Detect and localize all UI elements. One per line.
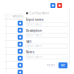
- staticText: Enter value: [27, 23, 42, 26]
- button[interactable]: Edit row: [18, 63, 23, 68]
- staticText: Input name: [26, 18, 44, 21]
- staticText: Type: [26, 40, 32, 43]
- staticText: Enter value: [27, 55, 42, 59]
- staticText: Configuration: [29, 11, 49, 15]
- button[interactable]: Edit row: [18, 35, 23, 40]
- staticText: Reset: [47, 64, 55, 67]
- staticText: Actions: [12, 14, 22, 18]
- button[interactable]: Save: [58, 62, 67, 68]
- staticText: Save: [60, 64, 65, 67]
- button[interactable]: Delete: [57, 3, 62, 8]
- button[interactable]: Edit row: [18, 70, 23, 74]
- staticText: Enter value: [27, 33, 42, 37]
- button[interactable]: Edit row: [18, 28, 23, 33]
- staticText: Description: [26, 29, 42, 32]
- staticText: Notes: [26, 50, 34, 54]
- button[interactable]: New: [50, 3, 55, 8]
- button[interactable]: Edit row: [18, 56, 23, 61]
- button[interactable]: Edit row: [18, 42, 23, 47]
- button[interactable]: Edit row: [18, 49, 23, 54]
- button[interactable]: Reset: [46, 62, 56, 68]
- button[interactable]: Edit row: [18, 21, 23, 26]
- staticText: Enter value: [27, 44, 42, 48]
